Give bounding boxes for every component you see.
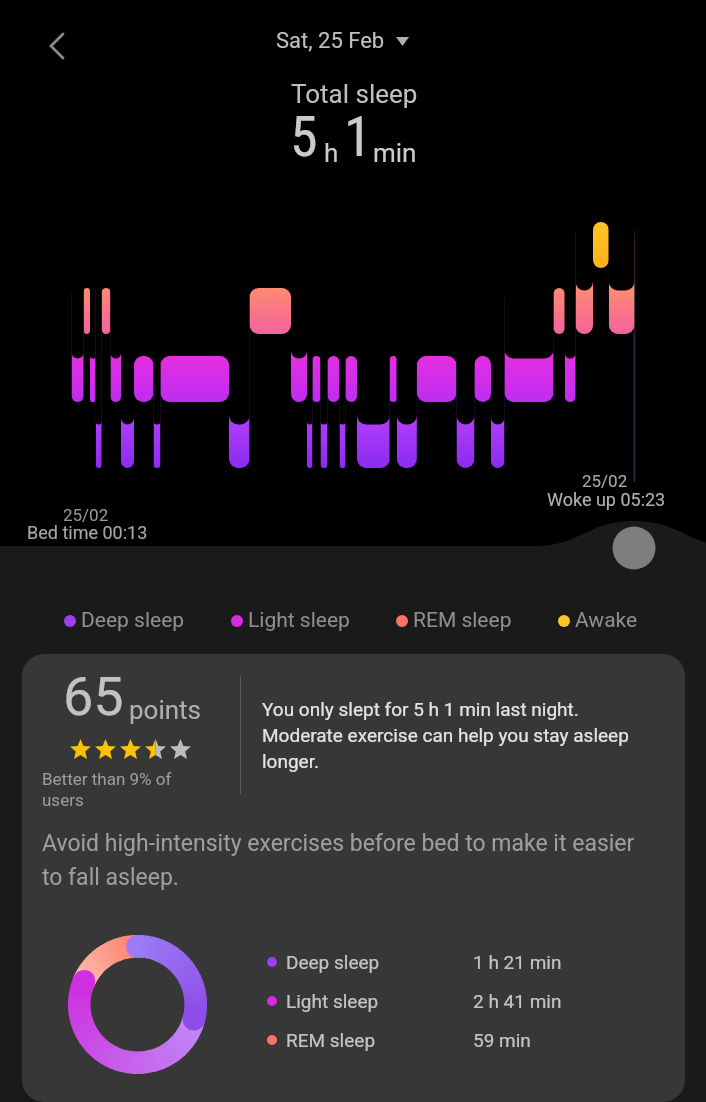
staticText: Deep sleep <box>81 608 185 633</box>
staticText: points <box>129 695 202 725</box>
staticText: Sat, 25 Feb <box>276 28 385 54</box>
staticText: Woke up 05:23 <box>547 489 666 510</box>
staticText: You only slept for 5 h 1 min last night.… <box>262 698 638 772</box>
staticText: Light sleep <box>286 990 473 1012</box>
staticText: 1 h 21 min <box>473 951 562 973</box>
staticText: 1 <box>344 104 372 170</box>
button[interactable]: 65 <box>22 654 685 1102</box>
staticText: 25/02 <box>63 505 109 525</box>
staticText: Bed time 00:13 <box>27 522 148 543</box>
staticText: Avoid high-intensity exercises before be… <box>42 830 652 891</box>
staticText: Deep sleep <box>286 951 473 973</box>
staticText: 5 <box>290 104 318 170</box>
staticText: REM sleep <box>413 608 512 633</box>
button[interactable]: Sat, 25 Feb <box>270 24 415 58</box>
button[interactable]: REM sleep <box>267 1029 531 1051</box>
staticText: Better than 9% of users <box>42 769 204 811</box>
staticText: 25/02 <box>582 471 628 491</box>
button[interactable]: Deep sleep <box>267 951 562 973</box>
staticText: min <box>373 138 417 168</box>
button[interactable]: Light sleep <box>267 990 562 1012</box>
button[interactable]: REM sleep <box>396 608 512 633</box>
button[interactable]: Awake <box>558 608 638 633</box>
staticText: Total sleep <box>291 79 418 109</box>
button[interactable]: Deep sleep <box>64 608 185 633</box>
button[interactable]: Back <box>34 23 80 69</box>
staticText: REM sleep <box>286 1029 473 1051</box>
staticText: Light sleep <box>248 608 350 633</box>
staticText: 2 h 41 min <box>473 990 562 1012</box>
staticText: 59 min <box>473 1029 531 1051</box>
staticText: 65 <box>63 665 124 728</box>
button[interactable]: Light sleep <box>231 608 350 633</box>
staticText: Awake <box>575 608 638 633</box>
staticText: h <box>324 138 339 168</box>
